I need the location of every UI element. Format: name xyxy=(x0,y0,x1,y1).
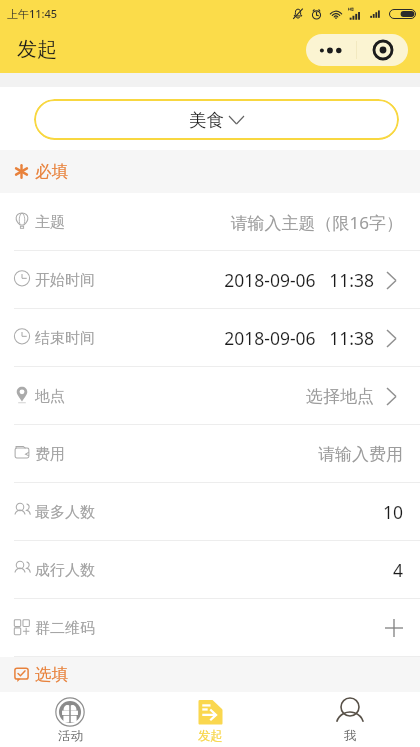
other: Mini program menu xyxy=(306,34,408,66)
button[interactable]: 成行人数 xyxy=(0,541,420,599)
staticText: 最多人数 xyxy=(35,503,95,522)
staticText: 上午11:45 xyxy=(7,6,58,21)
staticText: 活动 xyxy=(58,728,83,744)
staticText: 请输入主题（限16字） xyxy=(230,211,403,234)
staticText: 请输入费用 xyxy=(318,444,403,465)
button[interactable]: 活动 xyxy=(0,692,140,747)
staticText: 群二维码 xyxy=(35,619,95,638)
staticText: 我 xyxy=(344,728,357,744)
button[interactable]: 群二维码 xyxy=(0,599,420,657)
button[interactable]: 主题 xyxy=(0,193,420,251)
staticText: 开始时间 xyxy=(35,271,95,290)
staticText: 选填 xyxy=(35,664,68,685)
staticText: 2018-09-06 11:38 xyxy=(224,326,374,350)
staticText: 结束时间 xyxy=(35,329,95,348)
staticText: 发起 xyxy=(17,37,57,62)
staticText: 10 xyxy=(382,500,403,524)
staticText: 选择地点 xyxy=(306,386,374,407)
button[interactable] xyxy=(357,34,408,66)
button[interactable]: 结束时间 xyxy=(0,309,420,367)
button[interactable]: 我 xyxy=(280,692,420,747)
button[interactable]: 美食 xyxy=(34,99,399,140)
staticText: 费用 xyxy=(35,445,65,464)
button[interactable]: 发起 xyxy=(140,692,280,747)
staticText: 2018-09-06 11:38 xyxy=(224,268,374,292)
staticText: 必填 xyxy=(35,161,68,182)
staticText: 成行人数 xyxy=(35,561,95,580)
staticText: 发起 xyxy=(198,728,223,744)
staticText: 地点 xyxy=(35,387,65,406)
button[interactable]: 地点 xyxy=(0,367,420,425)
staticText: 4 xyxy=(392,558,403,582)
button[interactable]: 最多人数 xyxy=(0,483,420,541)
button[interactable] xyxy=(306,34,356,66)
staticText: 主题 xyxy=(35,213,65,232)
staticText: 美食 xyxy=(189,109,224,131)
button[interactable]: 费用 xyxy=(0,425,420,483)
button[interactable]: 开始时间 xyxy=(0,251,420,309)
